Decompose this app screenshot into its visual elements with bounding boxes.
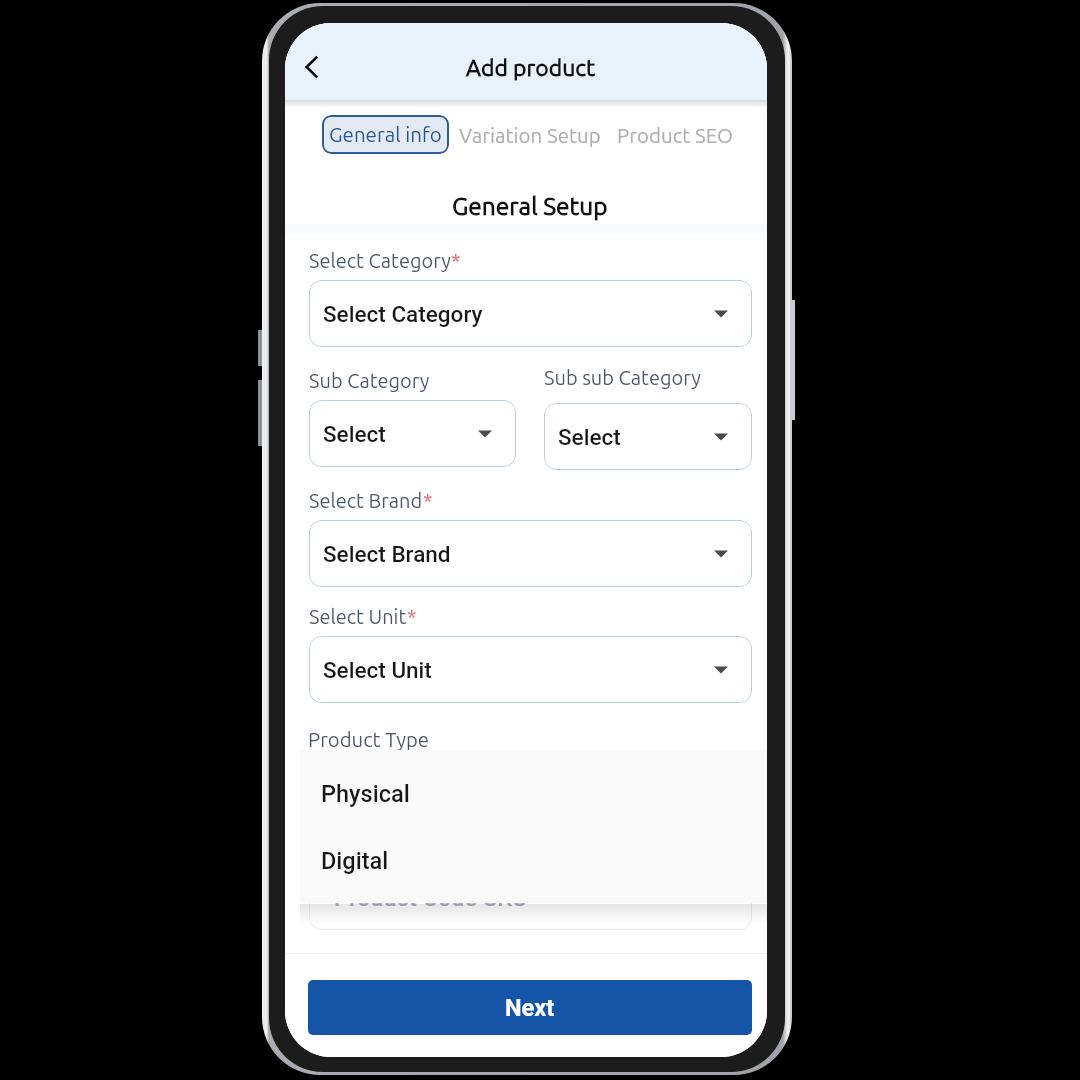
staticText: Product Code SKU xyxy=(334,884,528,912)
staticText: Select xyxy=(558,424,709,450)
staticText: Select xyxy=(323,421,473,447)
staticText: * xyxy=(423,489,433,511)
staticText: General info xyxy=(329,123,442,146)
button[interactable]: Select xyxy=(309,400,516,467)
staticText: Select Category xyxy=(309,249,451,271)
staticText: Digital xyxy=(321,847,389,875)
staticText: Next xyxy=(505,994,555,1022)
button[interactable]: Select Category xyxy=(309,280,752,347)
staticText: Select Unit xyxy=(323,657,709,683)
staticText: Select Category xyxy=(323,301,709,327)
staticText: * xyxy=(407,605,417,627)
staticText: Product Type xyxy=(308,728,429,751)
staticText: Sub Category xyxy=(309,369,430,391)
button[interactable]: Next xyxy=(308,980,752,1035)
staticText: General Setup xyxy=(452,192,608,219)
button[interactable]: Back xyxy=(286,42,336,92)
button[interactable]: Product Code SKU xyxy=(309,866,752,930)
button[interactable]: Select Brand xyxy=(309,520,752,587)
staticText: Select Brand xyxy=(323,541,709,567)
button[interactable]: Variation Setup xyxy=(459,122,601,148)
staticText: Select Unit xyxy=(309,605,407,627)
staticText: * xyxy=(451,249,461,271)
staticText: Physical xyxy=(321,780,410,808)
staticText: Add product xyxy=(466,55,596,81)
staticText: Variation Setup xyxy=(459,124,601,147)
staticText: Sub sub Category xyxy=(544,366,701,388)
button[interactable]: Physical xyxy=(300,760,767,827)
button[interactable]: Digital xyxy=(300,827,767,894)
button[interactable]: Select xyxy=(544,403,752,470)
button[interactable]: Select Unit xyxy=(309,636,752,703)
button[interactable]: Product SEO xyxy=(617,122,733,148)
staticText: Select Brand xyxy=(309,489,423,511)
button[interactable]: General info xyxy=(322,115,449,154)
staticText: Product SEO xyxy=(617,124,733,147)
